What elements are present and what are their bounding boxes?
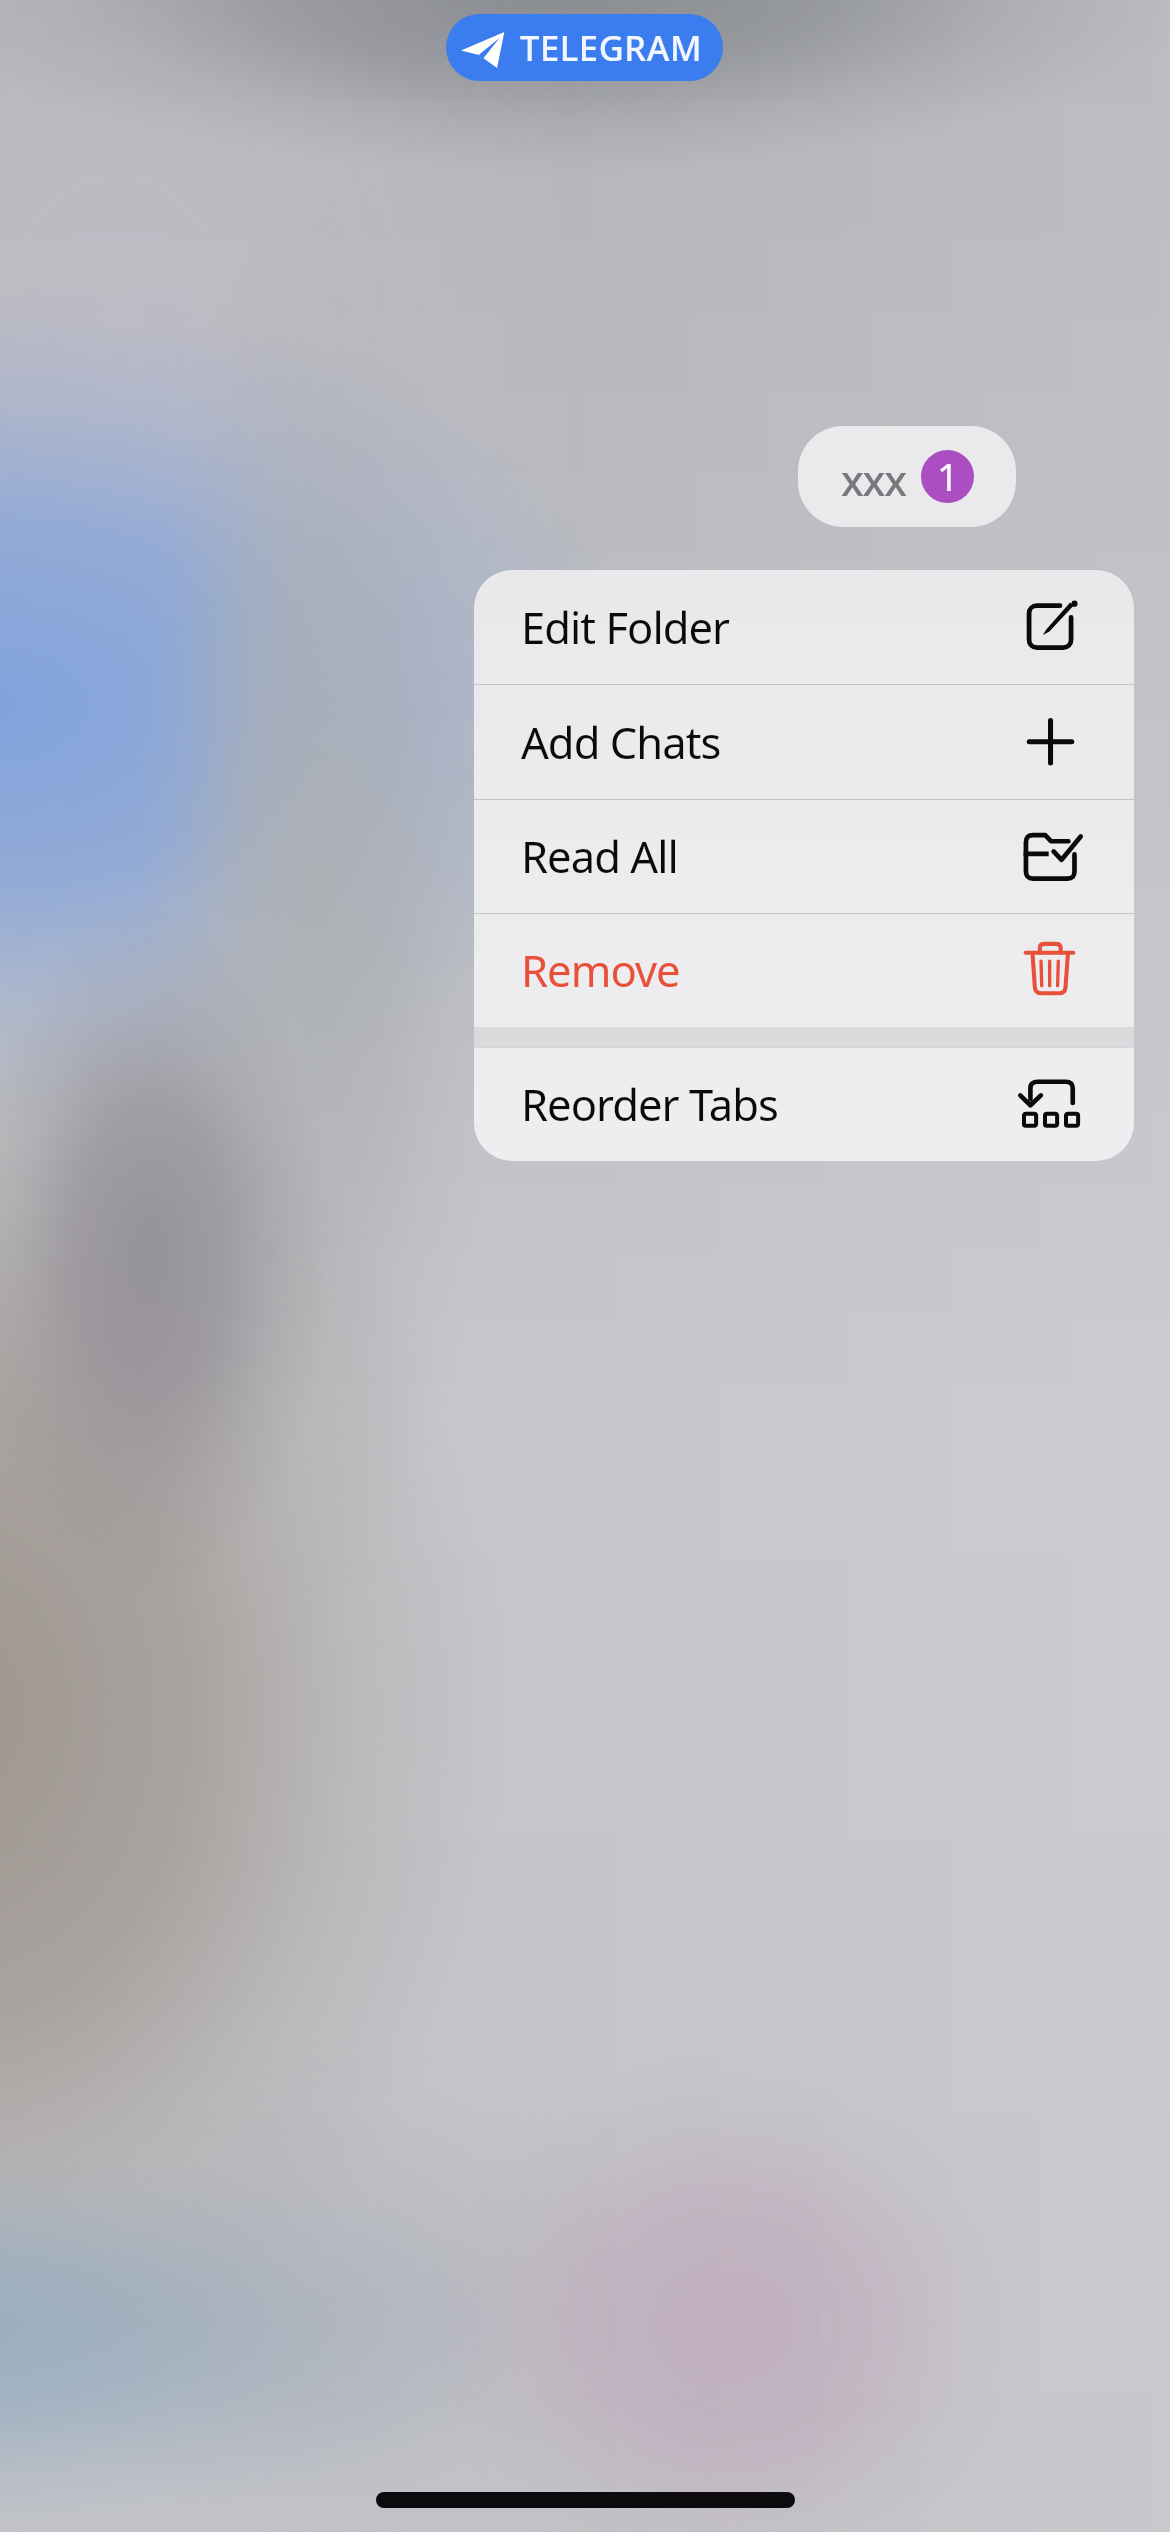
staticText: TELEGRAM bbox=[520, 24, 703, 71]
button[interactable]: Reorder Tabs bbox=[474, 1048, 1134, 1161]
button[interactable]: Add Chats bbox=[474, 685, 1134, 799]
staticText: Reorder Tabs bbox=[521, 1074, 778, 1133]
other: Read All bbox=[1022, 828, 1080, 886]
other: Edit Folder bbox=[1022, 598, 1080, 656]
button[interactable]: xxx bbox=[798, 426, 1016, 527]
button[interactable]: Remove bbox=[474, 914, 1134, 1027]
staticText: 1 bbox=[937, 450, 959, 502]
staticText: Add Chats bbox=[521, 712, 721, 771]
button[interactable]: Telegram bbox=[446, 14, 723, 81]
staticText: Remove bbox=[521, 940, 680, 999]
other: Reorder Tabs bbox=[1022, 1076, 1080, 1134]
staticText: xxx bbox=[841, 451, 906, 508]
staticText: Edit Folder bbox=[521, 597, 730, 656]
other: Remove bbox=[1022, 942, 1080, 1000]
other: Add Chats bbox=[1022, 713, 1080, 771]
other: Telegram bbox=[461, 26, 505, 70]
button[interactable]: Edit Folder bbox=[474, 570, 1134, 684]
button[interactable]: Read All bbox=[474, 800, 1134, 913]
staticText: Read All bbox=[521, 826, 678, 885]
